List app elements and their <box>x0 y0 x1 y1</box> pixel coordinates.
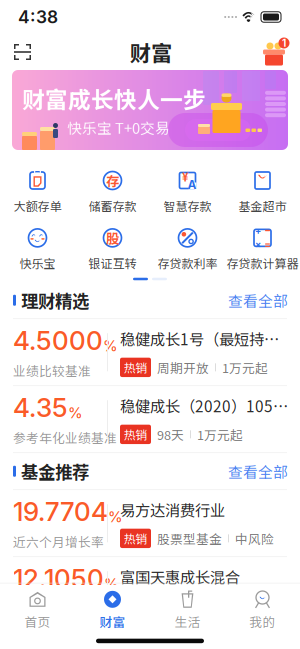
staticText: % <box>104 575 119 593</box>
staticText: 1万元起 <box>197 425 243 443</box>
staticText: 易方达消费行业 <box>120 498 225 521</box>
button[interactable]: 首页 <box>0 590 75 631</box>
staticText: % <box>68 404 83 422</box>
staticText: 4:38 <box>18 6 58 27</box>
button[interactable]: ¥ <box>150 171 225 214</box>
staticText: + <box>255 225 261 236</box>
staticText: % <box>103 337 118 355</box>
staticText: 1万元起 <box>222 358 268 376</box>
staticText: 中风险 <box>235 529 274 547</box>
staticText: 中风险 <box>235 596 274 614</box>
staticText: % <box>108 508 123 526</box>
staticText: 业绩比较基准 <box>13 361 91 380</box>
staticText: 热销 <box>123 359 147 376</box>
staticText: 存 <box>106 171 119 190</box>
staticText: 银证互转 <box>88 254 136 272</box>
staticText: 12.1050 <box>13 563 104 594</box>
staticText: 股票型基金 <box>157 529 222 547</box>
button[interactable]: 查看全部 <box>228 461 288 482</box>
button[interactable]: 12.1050 <box>0 557 300 623</box>
staticText: 4.5000 <box>13 325 103 356</box>
staticText: 首页 <box>24 612 50 631</box>
staticText: 周期开放 <box>157 358 209 376</box>
staticText: 基金超市 <box>238 197 286 214</box>
staticText: 稳健成长（2020）105期（... <box>120 394 288 417</box>
staticText: ¥ <box>182 170 188 184</box>
staticText: 生活 <box>174 612 200 631</box>
staticText: 参考年化业绩基准 <box>13 428 117 447</box>
staticText: 财富成长快人一步 <box>22 82 206 115</box>
staticText: 查看全部 <box>228 290 288 311</box>
staticText: 快乐宝 T+0交易 <box>67 117 170 138</box>
button[interactable]: 我的 <box>225 590 300 631</box>
staticText: 我的 <box>249 612 275 631</box>
button[interactable]: 财富 <box>75 590 150 631</box>
staticText: 近六个月增长率 <box>13 599 104 618</box>
staticText: 快乐宝 <box>19 254 55 272</box>
button[interactable]: 基金超市 <box>225 171 300 214</box>
button[interactable]: 4.5000 <box>0 319 300 385</box>
button[interactable]: + <box>225 228 300 272</box>
staticText: 稳健成长1号（最短持有182... <box>120 327 288 350</box>
staticText: 存贷款利率 <box>157 254 217 272</box>
staticText: 混合型基金 <box>157 596 222 614</box>
staticText: 19.7704 <box>13 496 108 527</box>
staticText: 近六个月增长率 <box>13 532 104 551</box>
staticText: 智慧存款 <box>163 197 211 214</box>
staticText: A <box>187 177 196 192</box>
staticText: 财富 <box>130 37 172 67</box>
staticText: 98天 <box>157 425 184 443</box>
staticText: 存贷款计算器 <box>226 254 298 272</box>
staticText: 热销 <box>123 426 147 443</box>
button[interactable]: 快乐宝 <box>0 228 75 272</box>
staticText: 基金推荐 <box>21 459 89 484</box>
staticText: × <box>255 240 261 251</box>
staticText: 财富 <box>99 612 125 631</box>
staticText: 理财精选 <box>21 288 89 313</box>
button[interactable]: 生活 <box>150 590 225 631</box>
staticText: 热销 <box>123 530 147 547</box>
staticText: 4.35 <box>13 392 68 423</box>
staticText: 富国天惠成长混合 <box>120 565 240 588</box>
button[interactable]: 查看全部 <box>228 290 288 311</box>
button[interactable]: 19.7704 <box>0 490 300 556</box>
button[interactable]: 存 <box>75 171 150 214</box>
button[interactable]: 股 <box>75 228 150 272</box>
button[interactable]: 扫一扫 <box>14 34 58 70</box>
staticText: 股 <box>106 228 119 247</box>
staticText: 1 <box>282 37 286 49</box>
staticText: 储蓄存款 <box>88 197 136 214</box>
button[interactable]: 4.35 <box>0 386 300 452</box>
staticText: 查看全部 <box>228 461 288 482</box>
staticText: 大额存单 <box>13 197 61 214</box>
button[interactable]: 存贷款利率 <box>150 228 225 272</box>
button[interactable]: 礼品 <box>244 34 288 70</box>
button[interactable]: 大额存单 <box>0 171 75 214</box>
